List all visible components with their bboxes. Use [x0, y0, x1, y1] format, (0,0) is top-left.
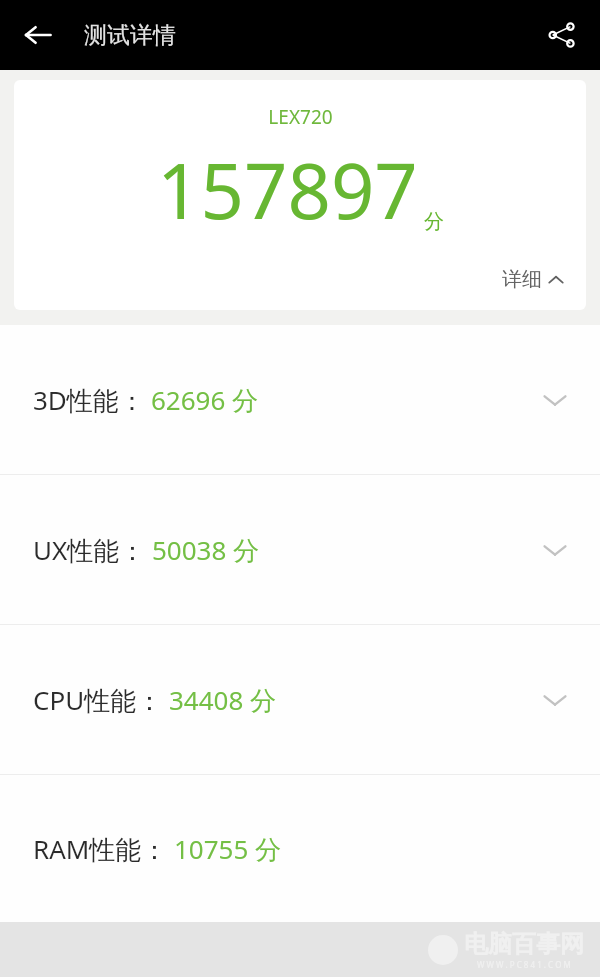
staticText: 10755 分: [174, 831, 282, 867]
staticText: 62696 分: [151, 382, 259, 418]
staticText: LEX720: [268, 104, 333, 130]
staticText: UX性能：: [33, 532, 146, 568]
button[interactable]: CPU性能：: [0, 625, 600, 774]
button[interactable]: Share: [538, 11, 586, 59]
staticText: 测试详情: [84, 21, 176, 50]
staticText: W W W . P C 8 4 1 . C O M: [477, 959, 571, 970]
staticText: 34408 分: [169, 682, 277, 718]
button[interactable]: 3D性能：: [0, 325, 600, 474]
staticText: 分: [424, 209, 444, 234]
staticText: 50038 分: [152, 532, 260, 568]
staticText: CPU性能：: [33, 682, 163, 718]
button[interactable]: RAM性能：: [0, 775, 600, 922]
staticText: RAM性能：: [33, 831, 168, 867]
button[interactable]: UX性能：: [0, 475, 600, 624]
button[interactable]: Back: [14, 11, 62, 59]
staticText: 157897: [157, 138, 418, 242]
button[interactable]: 详细: [502, 267, 564, 292]
button[interactable]: LEX720: [14, 80, 586, 310]
staticText: 详细: [502, 267, 542, 292]
staticText: 3D性能：: [33, 382, 145, 418]
staticText: 电脑百事网: [464, 929, 584, 959]
